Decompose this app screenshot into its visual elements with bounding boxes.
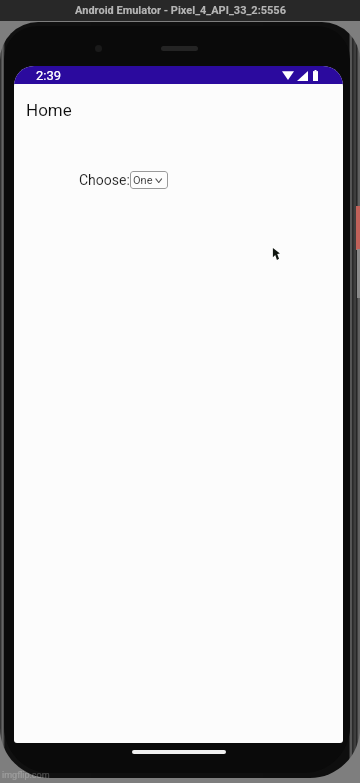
staticText: 2:39 xyxy=(36,68,62,83)
staticText: One xyxy=(133,174,153,187)
staticText: Android Emulator - Pixel_4_API_33_2:5556 xyxy=(75,4,286,17)
staticText: imgflip.com xyxy=(2,770,50,781)
button[interactable]: Choose option xyxy=(130,171,168,189)
staticText: Home xyxy=(26,100,72,120)
staticText: Choose: xyxy=(79,172,130,188)
